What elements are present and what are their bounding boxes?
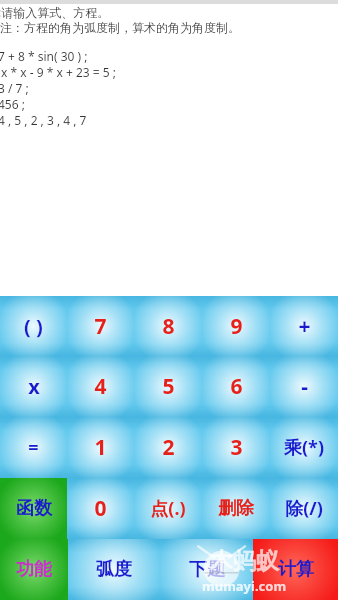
staticText: 功能 [16, 558, 52, 581]
button[interactable]: 7 [67, 296, 134, 356]
other: mumayi.com watermark [176, 541, 328, 599]
staticText: 木蚂蚁 [210, 547, 279, 576]
staticText: :请输入算式、方程。 [0, 4, 110, 20]
button[interactable]: - [270, 356, 338, 417]
staticText: 8 [162, 312, 175, 341]
staticText: 计算 [278, 558, 314, 581]
staticText: + [298, 312, 311, 341]
staticText: 2 [162, 433, 175, 462]
staticText: x * x - 9 * x + 23 = 5 ; [0, 64, 116, 80]
staticText: 6 [230, 372, 243, 401]
staticText: 4 , 5 , 2 , 3 , 4 , 7 [0, 112, 87, 128]
staticText: 7 + 8 * sin( 30 ) ; [0, 48, 88, 64]
button[interactable]: 计算 [253, 539, 338, 600]
button[interactable]: 8 [134, 296, 202, 356]
staticText: 点(.) [150, 496, 186, 521]
staticText: 4 [94, 372, 107, 401]
button[interactable]: 下题 [160, 539, 253, 600]
staticText: 9 [230, 312, 243, 341]
button[interactable]: 5 [134, 356, 202, 417]
staticText: 弧度 [96, 558, 132, 581]
button[interactable]: 乘(*) [270, 417, 338, 478]
staticText: 3 [230, 433, 243, 462]
staticText: 乘(*) [284, 435, 324, 460]
staticText: 函数 [16, 497, 52, 520]
button[interactable]: 4 [67, 356, 134, 417]
staticText: 删除 [218, 497, 254, 520]
staticText: 0 [94, 494, 107, 523]
button[interactable]: 3 [202, 417, 270, 478]
staticText: 下题 [189, 558, 225, 581]
staticText: 除(/) [285, 496, 323, 521]
staticText: 1 [94, 433, 107, 462]
button[interactable]: + [270, 296, 338, 356]
staticText: - [301, 372, 308, 401]
button[interactable]: x [0, 356, 67, 417]
button[interactable]: 功能 [0, 539, 68, 600]
button[interactable]: 2 [134, 417, 202, 478]
staticText: 3 / 7 ; [0, 80, 29, 96]
button[interactable]: = [0, 417, 67, 478]
button[interactable]: 点(.) [134, 478, 202, 539]
button[interactable]: 弧度 [68, 539, 160, 600]
staticText: = [28, 435, 39, 460]
button[interactable]: ( ) [0, 296, 67, 356]
button[interactable]: 9 [202, 296, 270, 356]
button[interactable]: 除(/) [270, 478, 338, 539]
staticText: 5 [162, 372, 175, 401]
staticText: 注：方程的角为弧度制，算术的角为角度制。 [0, 20, 240, 35]
button[interactable]: 删除 [202, 478, 270, 539]
staticText: ( ) [24, 313, 43, 340]
button[interactable]: 6 [202, 356, 270, 417]
staticText: mumayi.com [202, 577, 287, 595]
staticText: x [28, 373, 40, 400]
button[interactable]: 函数 [0, 478, 67, 539]
button[interactable]: 1 [67, 417, 134, 478]
staticText: 456 ; [0, 96, 25, 112]
button[interactable]: 0 [67, 478, 134, 539]
staticText: 7 [94, 312, 107, 341]
